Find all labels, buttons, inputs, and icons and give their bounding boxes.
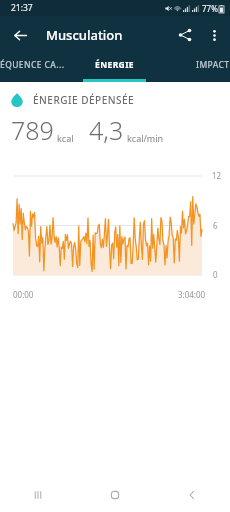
staticText: 4,3 (89, 113, 124, 147)
staticText: 00:00 (13, 289, 34, 300)
button[interactable]: Recent apps (0, 478, 76, 512)
staticText: Musculation (46, 26, 123, 44)
button[interactable]: Home (76, 478, 153, 512)
staticText: 0 (213, 269, 218, 280)
staticText: 21:37 (11, 2, 33, 14)
staticText: 3:04:00 (178, 289, 206, 300)
staticText: 12 (212, 170, 222, 181)
button[interactable]: Back (4, 19, 36, 51)
button[interactable]: More options (200, 20, 228, 50)
staticText: kcal (57, 132, 74, 144)
staticText: kcal/min (127, 132, 164, 144)
button[interactable]: IMPACT (153, 54, 230, 82)
button[interactable]: Back (153, 478, 230, 512)
staticText: 77% (202, 3, 218, 14)
staticText: 789 (11, 113, 54, 147)
button[interactable]: ÉQUENCE CA... (0, 54, 76, 82)
staticText: ÉNERGIE DÉPENSÉE (33, 93, 135, 107)
staticText: ÉQUENCE CA... (0, 59, 65, 71)
button[interactable]: Share (170, 20, 200, 50)
staticText: ÉNERGIE (95, 59, 135, 71)
button[interactable]: ÉNERGIE (76, 54, 153, 82)
staticText: IMPACT (196, 59, 230, 71)
staticText: 6 (213, 220, 218, 231)
